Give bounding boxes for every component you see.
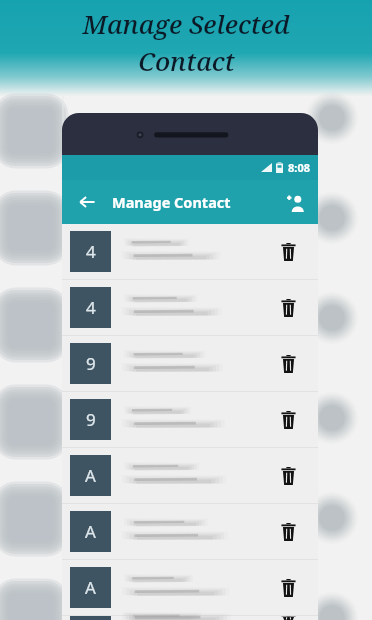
button[interactable]: Delete contact bbox=[266, 342, 310, 386]
button[interactable]: Delete contact bbox=[266, 566, 310, 610]
button[interactable]: Back bbox=[70, 185, 104, 219]
staticText: 8:08 bbox=[288, 160, 310, 175]
button[interactable]: 9 bbox=[62, 392, 318, 448]
button[interactable]: 4 bbox=[62, 280, 318, 336]
staticText: Manage Selected bbox=[82, 6, 290, 41]
staticText: 4 bbox=[86, 296, 96, 319]
button[interactable]: Delete contact bbox=[266, 616, 310, 620]
staticText: 9 bbox=[86, 352, 96, 375]
button[interactable]: A bbox=[62, 448, 318, 504]
button[interactable]: 9 bbox=[62, 336, 318, 392]
staticText: A bbox=[85, 464, 96, 487]
button[interactable]: Delete contact bbox=[266, 510, 310, 554]
button[interactable]: A bbox=[62, 560, 318, 616]
staticText: Manage Contact bbox=[112, 192, 231, 212]
button[interactable]: Delete contact bbox=[266, 230, 310, 274]
button[interactable]: Delete contact bbox=[266, 454, 310, 498]
staticText: Contact bbox=[138, 43, 235, 78]
button[interactable]: Delete contact bbox=[266, 286, 310, 330]
staticText: 9 bbox=[86, 408, 96, 431]
staticText: A bbox=[85, 576, 96, 599]
staticText: 4 bbox=[86, 240, 96, 263]
button[interactable]: 4 bbox=[62, 224, 318, 280]
button[interactable]: A bbox=[62, 616, 318, 620]
button[interactable]: A bbox=[62, 504, 318, 560]
button[interactable]: Delete contact bbox=[266, 398, 310, 442]
staticText: A bbox=[85, 520, 96, 543]
button[interactable]: Add contact bbox=[278, 185, 312, 219]
